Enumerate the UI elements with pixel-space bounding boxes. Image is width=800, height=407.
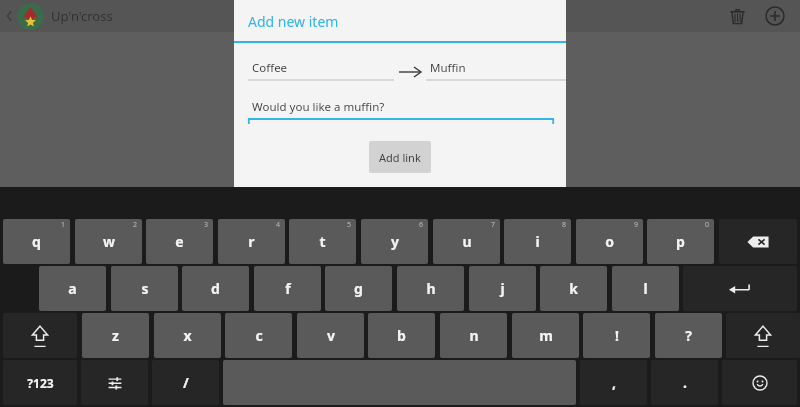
button[interactable]: b [368,313,435,358]
staticText: 1 [61,220,66,230]
staticText: a [68,279,77,298]
button[interactable]: o [576,219,643,264]
button[interactable]: n [440,313,507,358]
staticText: Add new item [248,12,339,31]
button[interactable]: e [146,219,213,264]
button[interactable]: r [218,219,285,264]
button[interactable]: Add [756,0,794,32]
button[interactable]: t [289,219,356,264]
staticText: e [175,232,184,251]
button[interactable]: Shift [3,313,77,358]
button[interactable]: m [512,313,579,358]
button[interactable]: k [540,266,607,311]
staticText: o [605,232,614,251]
staticText: d [211,279,220,298]
staticText: h [426,279,436,298]
staticText: Would you like a muffin? [252,99,385,115]
staticText: t [319,232,326,251]
staticText: y [391,232,399,251]
button[interactable]: . [651,360,718,405]
button[interactable]: l [612,266,679,311]
button[interactable]: Shift [726,313,800,358]
button[interactable]: i [504,219,571,264]
staticText: n [469,326,479,345]
staticText: q [32,232,41,251]
staticText: j [500,279,505,298]
button[interactable]: x [154,313,221,358]
staticText: 8 [562,220,567,230]
staticText: g [354,279,363,298]
staticText: 7 [491,220,496,230]
button[interactable]: ?123 [3,360,77,405]
staticText: 2 [133,220,138,230]
staticText: z [112,326,119,345]
button[interactable]: h [397,266,464,311]
staticText: r [248,232,255,251]
staticText: Coffee [252,60,288,76]
button[interactable]: ? [655,313,722,358]
staticText: i [535,232,540,251]
button[interactable]: Coffee [248,60,394,84]
button[interactable]: ! [583,313,650,358]
button[interactable]: g [325,266,392,311]
staticText: s [141,279,149,298]
staticText: x [183,326,192,345]
staticText: / [183,373,189,392]
button[interactable]: f [254,266,321,311]
button[interactable]: Settings [81,360,148,405]
staticText: ? [685,326,692,345]
staticText: u [462,232,472,251]
staticText: f [285,279,291,298]
staticText: l [643,279,648,298]
staticText: , [612,373,616,392]
button[interactable]: w [75,219,142,264]
staticText: 0 [705,220,710,230]
button[interactable]: Emoji [722,360,797,405]
button[interactable]: q [3,219,70,264]
staticText: Up'n'cross [51,7,113,25]
staticText: p [676,232,685,251]
button[interactable]: Delete [718,0,756,32]
staticText: 9 [634,220,639,230]
button[interactable]: , [580,360,647,405]
button[interactable]: s [111,266,178,311]
button[interactable]: j [469,266,536,311]
button[interactable]: z [82,313,149,358]
staticText: c [255,326,263,345]
button[interactable]: u [433,219,500,264]
button[interactable]: y [361,219,428,264]
button[interactable]: a [39,266,106,311]
button[interactable]: Enter [683,266,797,311]
staticText: k [569,279,578,298]
staticText: . [683,373,687,392]
staticText: w [103,232,115,251]
staticText: 3 [204,220,209,230]
button[interactable]: d [182,266,249,311]
button[interactable]: Add link [369,141,431,173]
staticText: m [539,326,553,345]
staticText: 4 [276,220,281,230]
button[interactable]: Would you like a muffin? [248,99,554,125]
staticText: Muffin [430,60,466,76]
staticText: ?123 [27,375,54,391]
staticText: 5 [347,220,352,230]
staticText: Add link [379,150,421,165]
staticText: v [327,326,335,345]
staticText: 6 [419,220,424,230]
button[interactable]: Backspace [719,219,797,264]
button[interactable]: Muffin [426,60,566,84]
staticText: b [397,326,406,345]
button[interactable]: c [225,313,292,358]
staticText: ! [615,326,619,345]
button[interactable]: p [647,219,714,264]
button[interactable]: v [297,313,364,358]
button[interactable]: / [152,360,219,405]
